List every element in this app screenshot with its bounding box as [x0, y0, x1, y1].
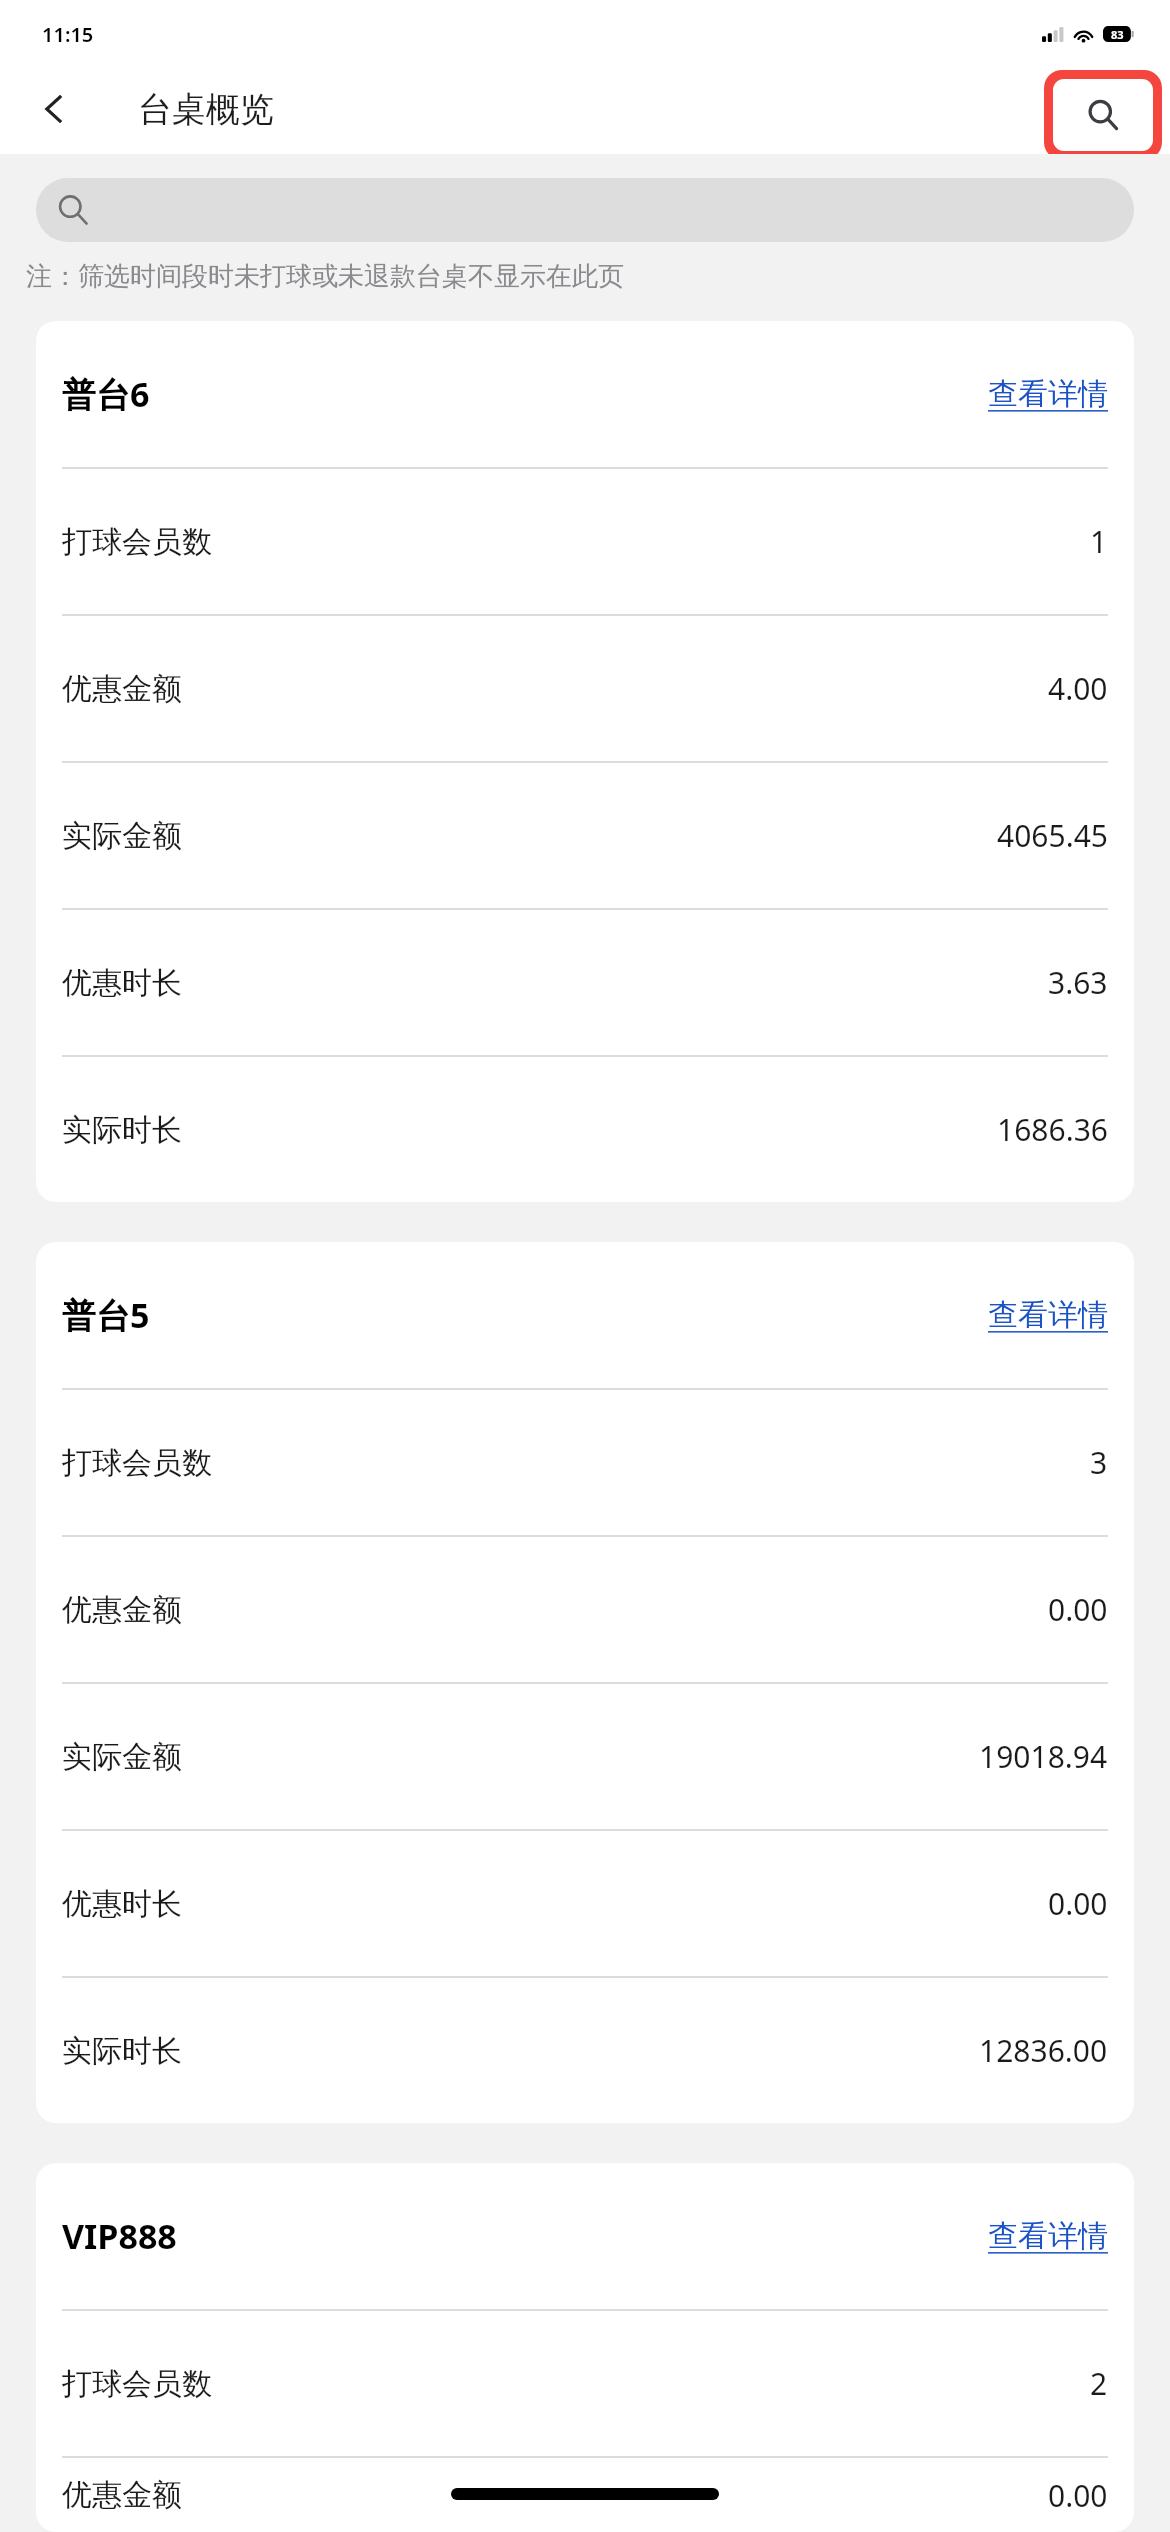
- staticText: 注：筛选时间段时未打球或未退款台桌不显示在此页: [26, 260, 624, 293]
- staticText: 0.00: [1048, 2475, 1108, 2516]
- staticText: 优惠金额: [62, 1591, 182, 1629]
- staticText: 查看详情: [988, 2217, 1108, 2255]
- button[interactable]: 打球会员数: [36, 469, 1134, 614]
- button[interactable]: 打球会员数: [36, 1390, 1134, 1535]
- button[interactable]: 优惠金额: [36, 616, 1134, 761]
- button[interactable]: 实际金额: [36, 1684, 1134, 1829]
- staticText: 11:15: [42, 21, 94, 48]
- staticText: 普台6: [62, 371, 150, 417]
- staticText: 优惠金额: [62, 670, 182, 708]
- staticText: 查看详情: [988, 375, 1108, 413]
- button[interactable]: 实际时长: [36, 1978, 1134, 2123]
- button[interactable]: 实际时长: [36, 1057, 1134, 1202]
- staticText: 实际时长: [62, 2032, 182, 2070]
- button[interactable]: 普台5: [36, 1242, 1134, 1388]
- button[interactable]: Search: [1053, 79, 1153, 151]
- staticText: 83: [1111, 27, 1124, 42]
- button[interactable]: 优惠时长: [36, 910, 1134, 1055]
- staticText: 1: [1090, 521, 1108, 562]
- button[interactable]: Back: [22, 77, 86, 141]
- staticText: 打球会员数: [62, 523, 212, 561]
- staticText: 实际金额: [62, 1738, 182, 1776]
- staticText: 台桌概览: [138, 88, 274, 131]
- button[interactable]: 实际金额: [36, 763, 1134, 908]
- staticText: 实际金额: [62, 817, 182, 855]
- staticText: 打球会员数: [62, 2365, 212, 2403]
- staticText: 0.00: [1048, 1883, 1108, 1924]
- staticText: 优惠时长: [62, 964, 182, 1002]
- staticText: 查看详情: [988, 1296, 1108, 1334]
- button[interactable]: VIP888: [36, 2163, 1134, 2309]
- staticText: VIP888: [62, 2213, 177, 2259]
- staticText: 实际时长: [62, 1111, 182, 1149]
- staticText: 3: [1090, 1442, 1108, 1483]
- staticText: 优惠金额: [62, 2476, 182, 2514]
- button[interactable]: 优惠时长: [36, 1831, 1134, 1976]
- button[interactable]: 打球会员数: [36, 2311, 1134, 2456]
- staticText: 打球会员数: [62, 1444, 212, 1482]
- staticText: 2: [1090, 2363, 1108, 2404]
- staticText: 4065.45: [997, 815, 1108, 856]
- button[interactable]: 普台6: [36, 321, 1134, 467]
- button[interactable]: 优惠金额: [36, 1537, 1134, 1682]
- staticText: 优惠时长: [62, 1885, 182, 1923]
- button[interactable]: [36, 178, 1134, 242]
- staticText: 1686.36: [997, 1109, 1108, 1150]
- staticText: 0.00: [1048, 1589, 1108, 1630]
- staticText: 普台5: [62, 1292, 150, 1338]
- staticText: 4.00: [1048, 668, 1108, 709]
- staticText: 3.63: [1048, 962, 1108, 1003]
- staticText: 12836.00: [979, 2030, 1108, 2071]
- staticText: 19018.94: [979, 1736, 1108, 1777]
- button[interactable]: 优惠金额: [36, 2458, 1134, 2532]
